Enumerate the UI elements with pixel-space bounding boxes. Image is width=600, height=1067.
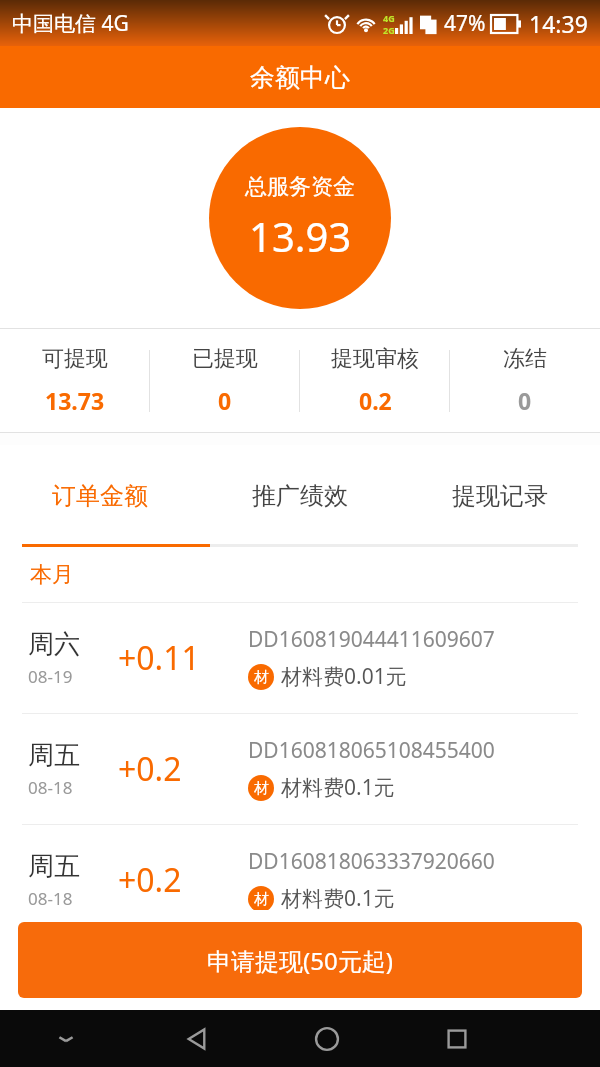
staticText: 周六 — [28, 628, 80, 661]
button[interactable]: 提现审核 — [300, 329, 450, 432]
button[interactable]: 周五 — [0, 714, 600, 824]
staticText: 14:39 — [529, 8, 588, 39]
staticText: 0.2 — [359, 385, 392, 416]
staticText: 0 — [218, 385, 232, 416]
staticText: DD160818063337920660 — [248, 847, 495, 876]
staticText: 4G — [383, 12, 395, 24]
staticText: DD160818065108455400 — [248, 736, 495, 765]
button[interactable]: 冻结 — [450, 329, 600, 432]
staticText: 材料费0.1元 — [281, 884, 395, 913]
staticText: 08-18 — [28, 887, 73, 910]
button[interactable]: 提现记录 — [400, 445, 600, 547]
staticText: 08-18 — [28, 776, 73, 799]
staticText: 13.73 — [45, 385, 105, 416]
button[interactable]: 订单金额 — [0, 445, 200, 547]
staticText: 材料费0.01元 — [281, 662, 407, 691]
staticText: +0.2 — [118, 858, 248, 902]
staticText: 提现记录 — [452, 481, 548, 511]
staticText: 08-19 — [28, 665, 73, 688]
staticText: 材 — [254, 779, 269, 798]
staticText: 冻结 — [503, 345, 547, 373]
staticText: 申请提现(50元起) — [207, 944, 393, 977]
staticText: 周五 — [28, 850, 80, 883]
staticText: 本月 — [30, 561, 74, 589]
staticText: 可提现 — [42, 345, 108, 373]
staticText: 材 — [254, 890, 269, 909]
button[interactable]: Back — [131, 1010, 262, 1067]
staticText: 订单金额 — [52, 481, 148, 511]
staticText: 余额中心 — [250, 62, 350, 93]
staticText: 周五 — [28, 739, 80, 772]
button[interactable]: Hide navigation bar — [0, 1010, 131, 1067]
staticText: 0 — [518, 385, 532, 416]
staticText: 推广绩效 — [252, 481, 348, 511]
button[interactable]: 申请提现(50元起) — [18, 922, 582, 998]
staticText: DD160819044411609607 — [248, 625, 495, 654]
staticText: 总服务资金 — [245, 173, 355, 201]
button[interactable]: 周五 — [0, 825, 600, 935]
staticText: 13.93 — [249, 209, 352, 263]
staticText: +0.2 — [118, 747, 248, 791]
staticText: 提现审核 — [331, 345, 419, 373]
staticText: 已提现 — [192, 345, 258, 373]
button[interactable]: 已提现 — [150, 329, 300, 432]
staticText: 47% — [444, 9, 486, 38]
button[interactable]: Recent apps — [392, 1010, 522, 1067]
button[interactable]: 周六 — [0, 603, 600, 713]
staticText: 材料费0.1元 — [281, 773, 395, 802]
button[interactable]: Home — [262, 1010, 392, 1067]
staticText: 材 — [254, 668, 269, 687]
staticText: +0.11 — [118, 636, 248, 680]
button[interactable]: 推广绩效 — [200, 445, 400, 547]
button[interactable]: 可提现 — [0, 329, 150, 432]
button[interactable]: 总服务资金 — [209, 127, 391, 309]
staticText: 中国电信 4G — [12, 9, 129, 38]
staticText: 2G — [383, 24, 395, 36]
